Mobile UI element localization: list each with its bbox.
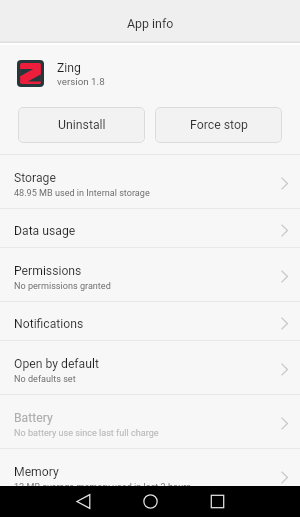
staticText: Permissions <box>14 264 82 278</box>
staticText: Open by default <box>14 357 99 371</box>
staticText: Force stop <box>190 118 248 132</box>
staticText: Memory <box>14 465 59 479</box>
staticText: Battery <box>14 411 53 425</box>
staticText: No permissions granted <box>14 281 111 292</box>
button[interactable]: Uninstall <box>18 107 145 143</box>
staticText: Notifications <box>14 317 84 331</box>
button[interactable]: Memory <box>0 449 300 502</box>
button[interactable]: Open by default <box>0 341 300 394</box>
staticText: 48.95 MB used in Internal storage <box>14 188 150 199</box>
button[interactable]: Back <box>68 486 98 517</box>
button[interactable]: Data usage <box>0 209 300 247</box>
button[interactable]: Notifications <box>0 302 300 340</box>
staticText: Storage <box>14 171 56 185</box>
staticText: 12 MB average memory used in last 3 hour… <box>14 482 191 493</box>
button[interactable]: Permissions <box>0 248 300 301</box>
staticText: App info <box>127 16 174 31</box>
staticText: Zing <box>57 61 81 75</box>
button[interactable]: Home <box>135 486 165 517</box>
staticText: No battery use since last full charge <box>14 428 159 439</box>
staticText: version 1.8 <box>57 76 105 87</box>
staticText: No defaults set <box>14 374 76 385</box>
button[interactable]: Battery <box>0 395 300 448</box>
button[interactable]: Recent apps <box>202 486 232 517</box>
button[interactable]: Force stop <box>155 107 282 143</box>
staticText: Uninstall <box>58 118 106 132</box>
button[interactable]: Storage <box>0 155 300 208</box>
staticText: Data usage <box>14 224 76 238</box>
